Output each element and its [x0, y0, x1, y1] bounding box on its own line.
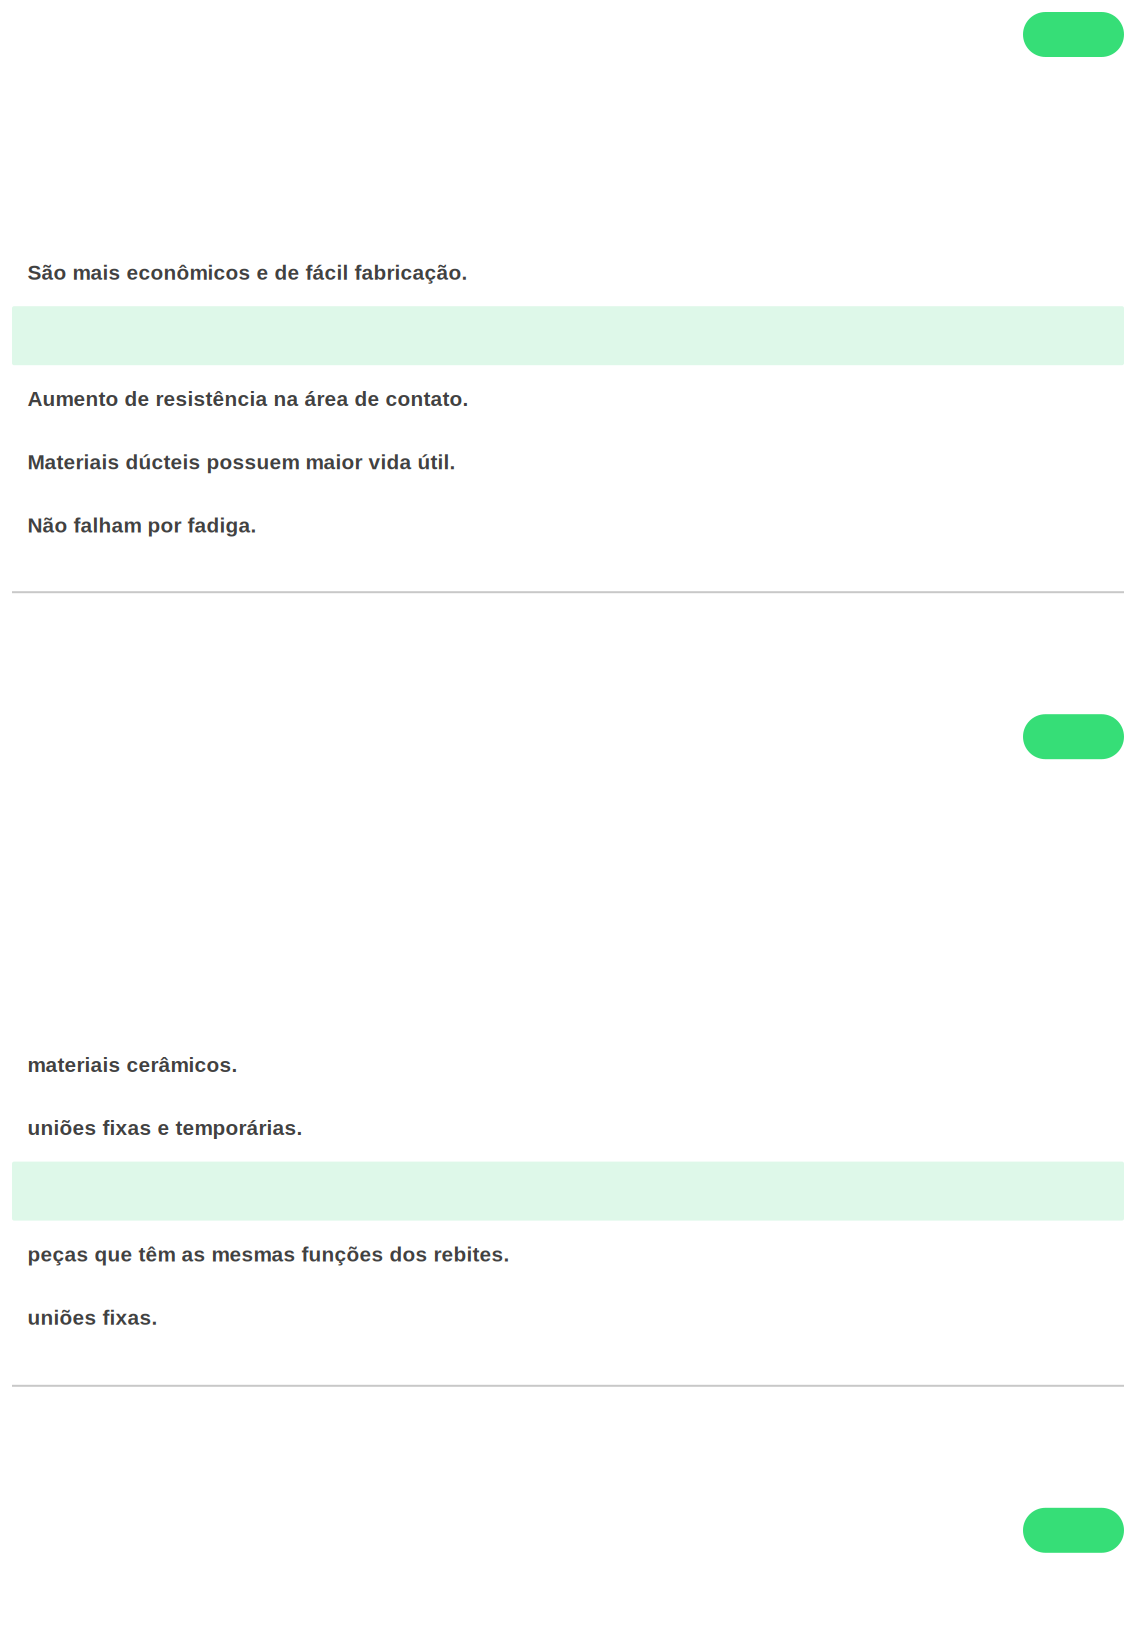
button[interactable]: peças que têm as mesmas funções dos rebi… [12, 1225, 1124, 1288]
staticText: materiais cerâmicos. [27, 1053, 237, 1076]
staticText: uniões fixas. [27, 1306, 157, 1329]
button[interactable]: Ver resposta [1023, 12, 1124, 57]
button[interactable]: Ver resposta [1023, 1508, 1124, 1553]
staticText: Não falham por fadiga. [27, 514, 256, 537]
button[interactable]: São mais econômicos e de fácil fabricaçã… [12, 243, 1124, 306]
button[interactable]: uniões fixas e temporárias. [12, 1098, 1124, 1162]
staticText: São mais econômicos e de fácil fabricaçã… [27, 261, 467, 284]
button[interactable]: Alternativa escolhida [12, 306, 1124, 369]
button[interactable]: Não falham por fadiga. [12, 496, 1124, 559]
button[interactable]: Ver resposta [1023, 714, 1124, 759]
staticText: peças que têm as mesmas funções dos rebi… [27, 1243, 509, 1266]
staticText: Aumento de resistência na área de contat… [27, 387, 468, 410]
button[interactable]: materiais cerâmicos. [12, 1035, 1124, 1098]
staticText: Materiais dúcteis possuem maior vida úti… [27, 450, 455, 474]
button[interactable]: uniões fixas. [12, 1288, 1124, 1351]
button[interactable]: Alternativa escolhida [12, 1162, 1124, 1225]
button[interactable]: Aumento de resistência na área de contat… [12, 369, 1124, 433]
staticText: uniões fixas e temporárias. [27, 1116, 302, 1139]
button[interactable]: Materiais dúcteis possuem maior vida úti… [12, 433, 1124, 496]
